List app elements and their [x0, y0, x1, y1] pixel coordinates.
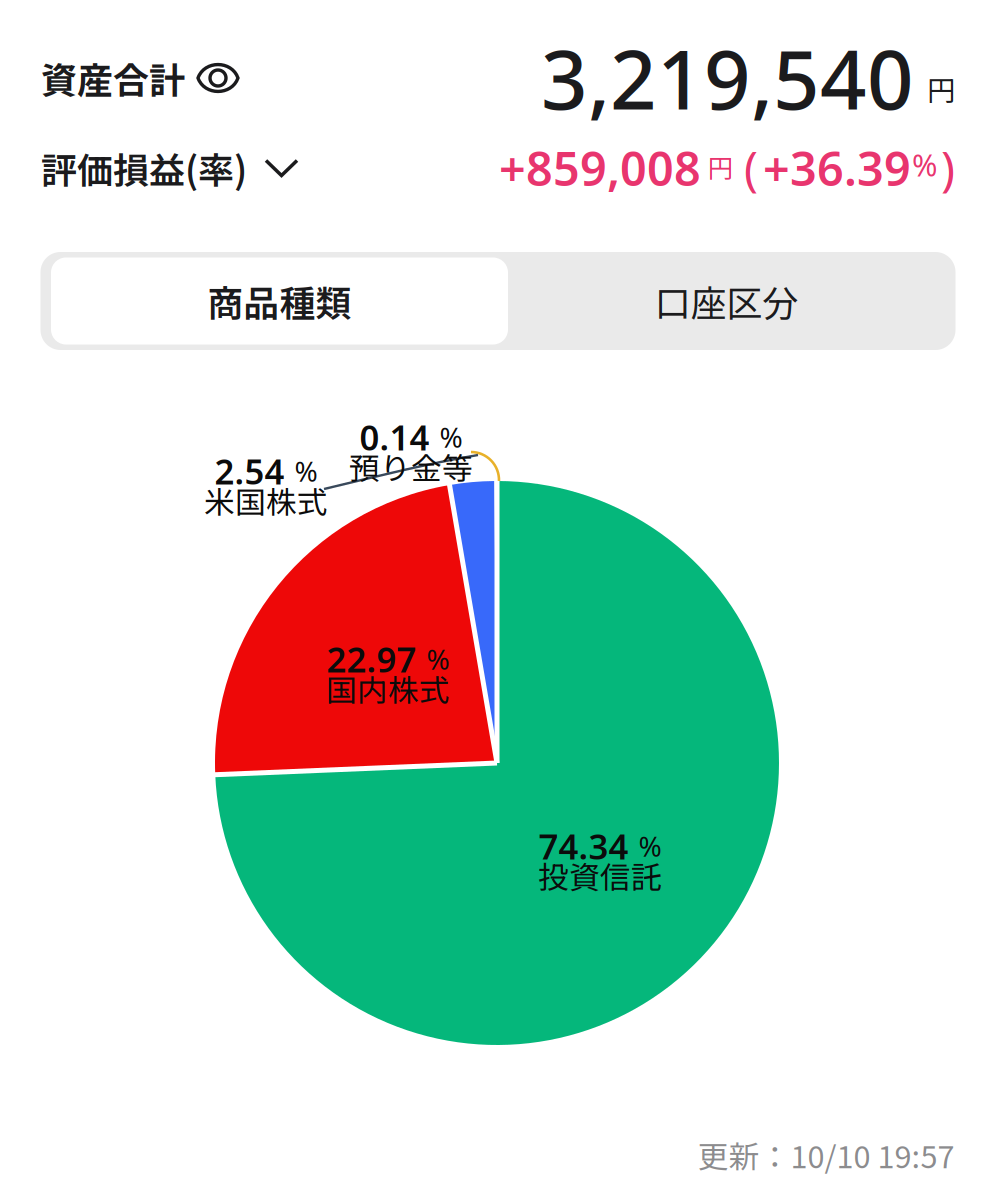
staticText: %	[638, 827, 661, 865]
staticText: 口座区分	[654, 275, 798, 327]
staticText: )	[941, 136, 955, 200]
staticText: 3,219,540	[541, 23, 914, 133]
staticText: 74.34	[538, 822, 628, 870]
staticText: 22.97	[326, 635, 416, 683]
button[interactable]: 商品種類	[51, 257, 508, 344]
staticText: %	[439, 418, 462, 456]
staticText: 米国株式	[204, 478, 328, 523]
button[interactable]: 資産合計	[41, 52, 240, 104]
staticText: 評価損益(率)	[41, 142, 247, 194]
staticText: 資産合計	[41, 52, 185, 104]
staticText: 投資信託	[538, 853, 662, 898]
staticText: +36.39	[763, 136, 911, 200]
staticText: +859,008	[499, 136, 701, 200]
staticText: 商品種類	[207, 275, 351, 327]
staticText: %	[426, 640, 449, 678]
staticText: 国内株式	[326, 666, 450, 711]
staticText: 預り金等	[349, 444, 473, 489]
staticText: 0.14	[359, 413, 429, 461]
staticText: (	[744, 136, 758, 200]
staticText: 円	[927, 68, 955, 109]
staticText: %	[294, 452, 317, 490]
staticText: 2.54	[214, 447, 284, 495]
staticText: 更新：10/10 19:57	[697, 1133, 954, 1177]
button[interactable]: 口座区分	[508, 257, 945, 344]
button[interactable]: 評価損益(率)	[41, 142, 297, 194]
staticText: 円	[708, 148, 733, 185]
staticText: %	[912, 144, 937, 185]
